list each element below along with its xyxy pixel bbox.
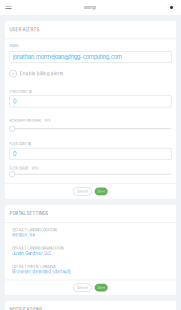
- button[interactable]: Slider: [9, 126, 171, 131]
- staticText: DEFAULT PORTAL LANGUAGE: [12, 265, 56, 269]
- button[interactable]: Menu: [2, 0, 15, 15]
- button[interactable]: Save: [95, 284, 108, 291]
- staticText: RESERVATION USAGE (0%): [9, 118, 51, 122]
- staticText: DEFAULT LANDING LOCATION: [12, 228, 56, 232]
- button[interactable]: DEFAULT LANDING ORGANIZATION: [12, 246, 169, 256]
- staticText: Browser detected (default): [12, 269, 71, 274]
- staticText: USER ALERTS: [9, 27, 39, 32]
- button[interactable]: Cancel: [73, 187, 91, 195]
- staticText: EMAIL: [9, 44, 19, 48]
- button[interactable]: Account: [165, 0, 178, 15]
- staticText: jonathan.mormejoan@frigg-computing.com: [13, 54, 122, 60]
- staticText: NOTIFICATIONS: [9, 307, 42, 310]
- button[interactable]: jonathan.mormejoan@frigg-computing.com: [9, 51, 171, 63]
- button[interactable]: DEFAULT LANDING LOCATION: [12, 228, 169, 238]
- staticText: Save: [97, 190, 105, 193]
- button[interactable]: 0: [9, 96, 171, 107]
- staticText: Cancel: [77, 190, 88, 193]
- staticText: Reston, VA: [12, 232, 35, 238]
- button[interactable]: DEFAULT PORTAL LANGUAGE: [12, 265, 169, 275]
- button[interactable]: Cancel: [73, 284, 91, 291]
- staticText: FLEX COST ($): [9, 142, 31, 146]
- staticText: Save: [97, 286, 105, 289]
- staticText: FLEX USAGE (0%): [9, 166, 38, 170]
- staticText: Cancel: [77, 286, 88, 289]
- staticText: PORTAL SETTINGS: [9, 211, 48, 216]
- button[interactable]: ✓: [9, 70, 171, 77]
- button[interactable]: Save: [95, 187, 108, 195]
- staticText: 0: [13, 150, 17, 157]
- staticText: FIXED COST ($): [9, 90, 32, 94]
- button[interactable]: 0: [9, 148, 171, 160]
- staticText: DEFAULT LANDING ORGANIZATION: [12, 246, 63, 250]
- staticText: 0: [13, 98, 17, 105]
- staticText: Justin Gardner LLC: [12, 251, 51, 256]
- staticText: Enable billing alerts: [20, 71, 63, 76]
- staticText: Settings: [83, 5, 96, 10]
- staticText: ✓: [11, 71, 14, 76]
- button[interactable]: Slider: [9, 171, 171, 177]
